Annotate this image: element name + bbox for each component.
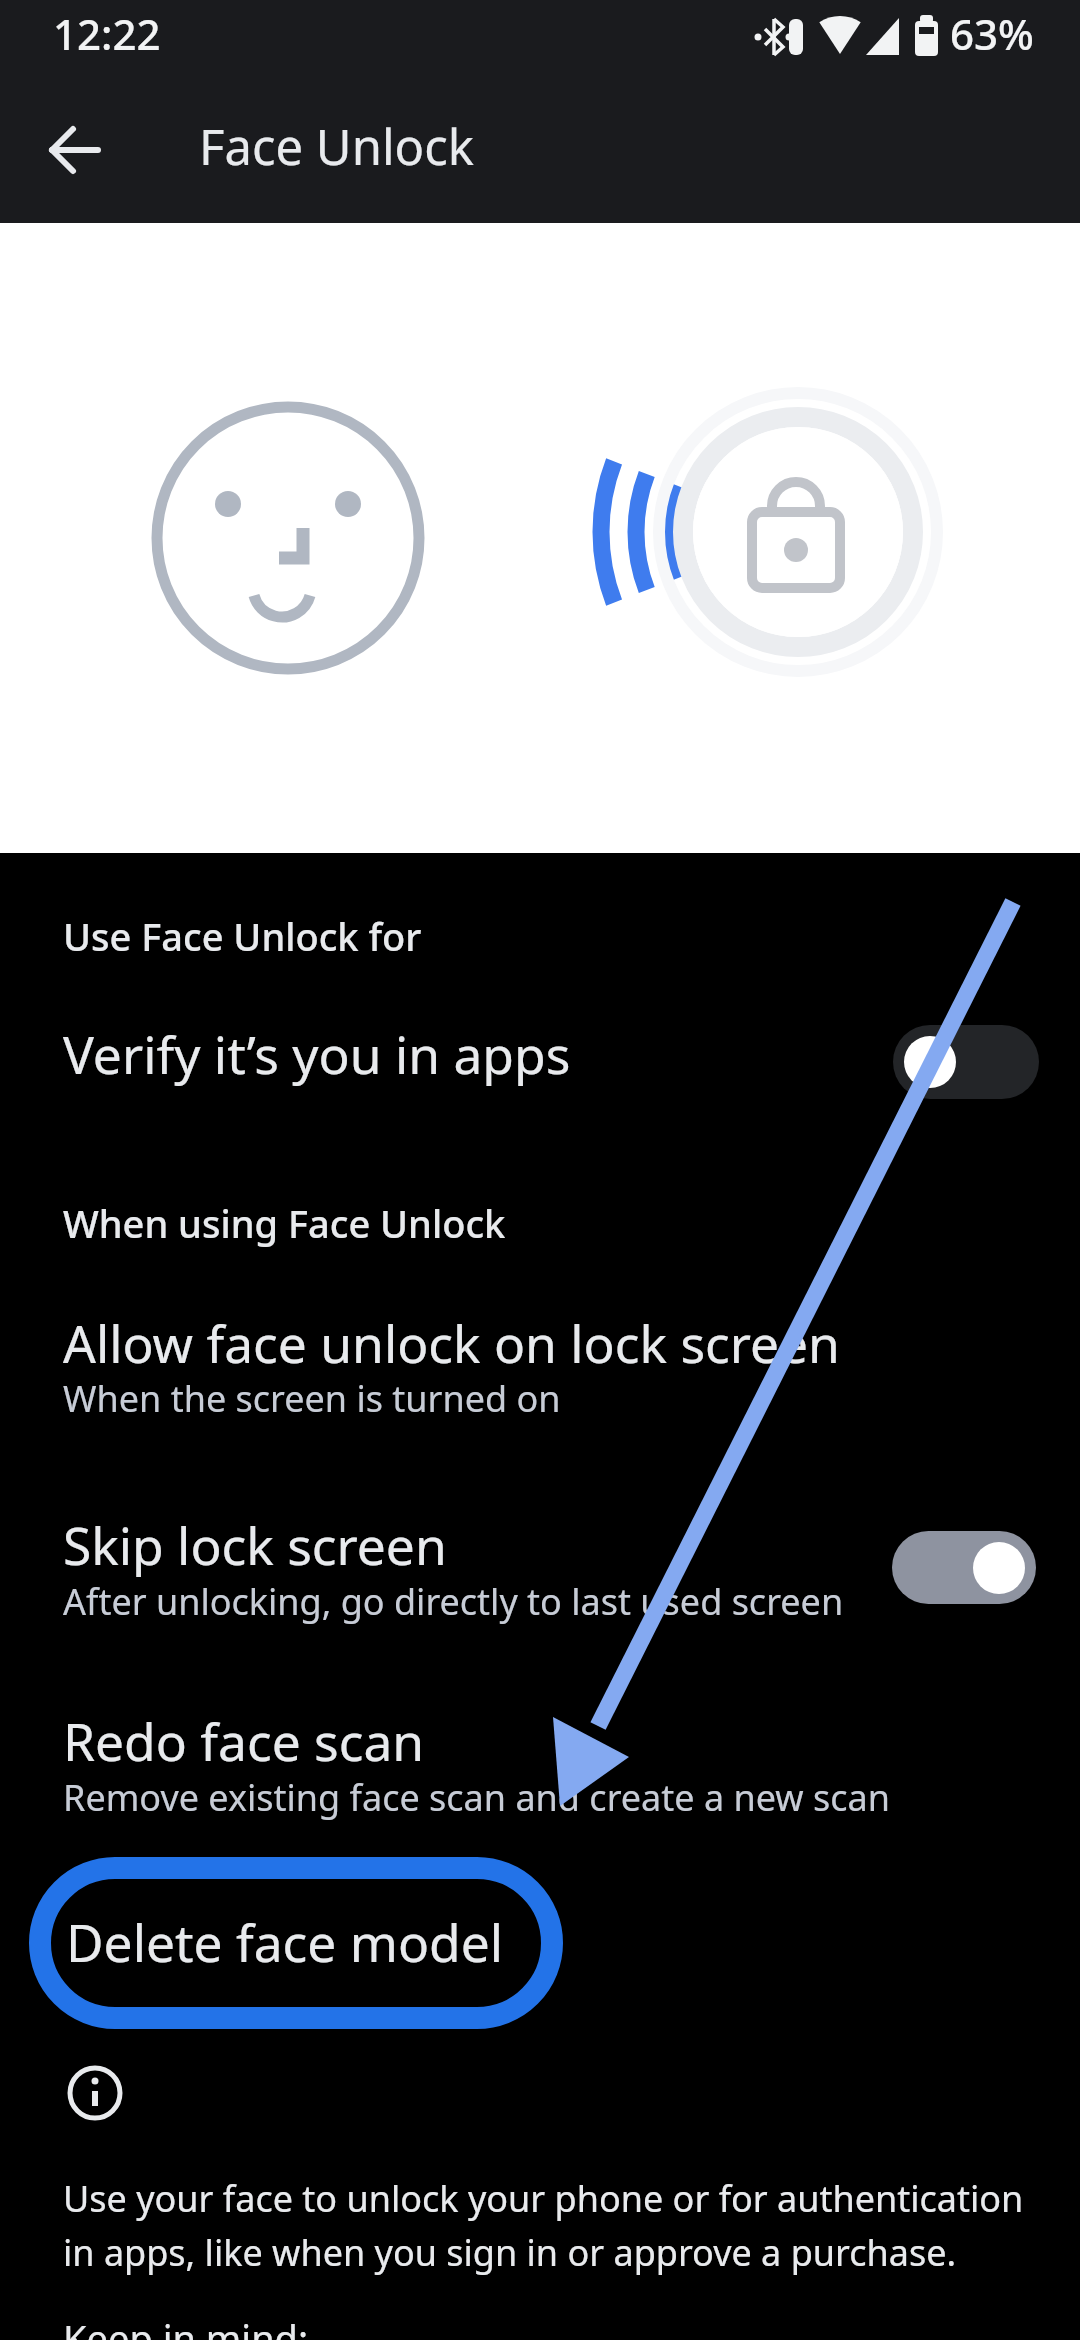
staticText: Redo face scan (63, 1706, 425, 1776)
button[interactable] (0, 1000, 1080, 1125)
staticText: When using Face Unlock (63, 1197, 506, 1249)
staticText: Face Unlock (199, 113, 474, 180)
staticText: Skip lock screen (63, 1510, 447, 1580)
button[interactable] (0, 1690, 1080, 1840)
button[interactable] (30, 1860, 560, 2028)
staticText: Allow face unlock on lock screen (63, 1308, 840, 1378)
staticText: Keep in mind: (63, 2312, 309, 2340)
staticText: After unlocking, go directly to last use… (63, 1577, 844, 1626)
staticText: 63% (950, 5, 1034, 62)
staticText: 12:22 (53, 5, 161, 62)
button[interactable] (0, 1290, 1080, 1440)
staticText: Remove existing face scan and create a n… (63, 1773, 890, 1822)
button[interactable] (892, 1531, 1036, 1604)
staticText: Delete face model (66, 1907, 504, 1977)
staticText: When the screen is turned on (63, 1374, 561, 1423)
button[interactable] (40, 115, 110, 185)
button[interactable] (893, 1025, 1039, 1099)
button[interactable] (0, 1492, 1080, 1642)
staticText: Use your face to unlock your phone or fo… (63, 2174, 1024, 2277)
staticText: Verify it’s you in apps (63, 1019, 571, 1089)
staticText: Use Face Unlock for (63, 910, 422, 962)
